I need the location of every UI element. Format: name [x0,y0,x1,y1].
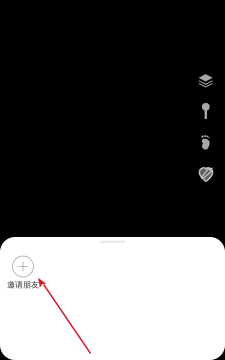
staticText: 邀请朋友 [7,280,39,290]
button[interactable]: Mark this place [195,163,217,185]
button[interactable]: Map layers [195,68,217,90]
button[interactable]: 邀请朋友 [1,256,45,290]
button[interactable]: Footprints [194,133,216,155]
button[interactable]: Drop pin [195,99,217,121]
